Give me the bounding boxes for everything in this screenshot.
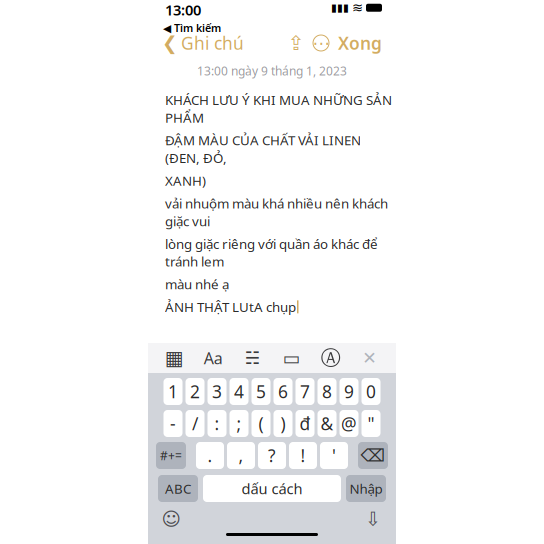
button[interactable]: @ <box>339 410 358 437</box>
button[interactable]: Checklist <box>239 346 265 370</box>
staticText: đ <box>299 412 310 435</box>
button[interactable]: ( <box>251 410 270 437</box>
button[interactable]: ABC <box>158 475 198 502</box>
staticText: ▮▮▮ <box>331 2 349 14</box>
staticText: & <box>320 412 333 435</box>
button[interactable]: , <box>227 442 255 469</box>
button[interactable]: ? <box>258 442 286 469</box>
staticText: 7 <box>300 380 310 403</box>
staticText: 2 <box>190 380 200 403</box>
button[interactable]: 1 <box>163 378 182 405</box>
staticText: ✕ <box>362 348 377 368</box>
button[interactable]: 4 <box>229 378 248 405</box>
staticText: ĐẬM MÀU CỦA CHẤT VẢI LINEN (ĐEN, ĐỎ, <box>165 131 361 167</box>
button[interactable]: Share <box>284 32 308 54</box>
staticText: " <box>367 412 374 435</box>
staticText: Ghi chú <box>181 31 244 54</box>
button[interactable]: 9 <box>339 378 358 405</box>
staticText: 0 <box>366 380 376 403</box>
button[interactable]: / <box>185 410 204 437</box>
staticText: ) <box>280 412 285 435</box>
button[interactable]: dấu cách <box>203 475 341 502</box>
staticText: ẢNH THẬT LUtA chụp <box>165 298 296 316</box>
button[interactable]: : <box>207 410 226 437</box>
staticText: lòng giặc riêng với quần áo khác để trán… <box>165 235 378 270</box>
button[interactable]: " <box>361 410 380 437</box>
staticText: ☵ <box>244 348 260 368</box>
button[interactable]: 2 <box>185 378 204 405</box>
staticText: ⌫ <box>360 446 385 465</box>
button[interactable]: Delete <box>358 442 388 469</box>
staticText: Aa <box>204 347 223 369</box>
staticText: , <box>238 444 243 467</box>
staticText: ☺ <box>161 508 180 530</box>
button[interactable]: ! <box>289 442 317 469</box>
staticText: ≋ <box>352 0 363 15</box>
staticText: 1 <box>168 380 178 403</box>
staticText: ▦ <box>165 347 184 369</box>
staticText: vải nhuộm màu khá nhiều nên khách giặc v… <box>165 194 388 230</box>
staticText: 3 <box>212 380 222 403</box>
button[interactable]: 3 <box>207 378 226 405</box>
button[interactable]: 5 <box>251 378 270 405</box>
button[interactable]: . <box>196 442 224 469</box>
staticText: dấu cách <box>241 479 302 498</box>
button[interactable]: Xong <box>334 27 386 58</box>
staticText: ⋯ <box>312 33 329 53</box>
staticText: ❮ <box>162 32 178 54</box>
button[interactable]: - <box>163 410 182 437</box>
staticText: 9 <box>344 380 354 403</box>
staticText: #+= <box>160 447 182 463</box>
button[interactable]: Table <box>161 346 187 370</box>
button[interactable]: 7 <box>295 378 314 405</box>
button[interactable]: Format <box>200 346 226 370</box>
staticText: ; <box>236 412 241 435</box>
staticText: : <box>214 412 219 435</box>
staticText: 13:00 ngày 9 tháng 1, 2023 <box>197 63 347 79</box>
button[interactable]: ' <box>320 442 348 469</box>
staticText: ( <box>258 412 263 435</box>
staticText: - <box>170 412 176 435</box>
button[interactable]: Markup <box>318 346 344 370</box>
staticText: @ <box>341 412 357 435</box>
staticText: 5 <box>256 380 266 403</box>
staticText: Xong <box>338 31 382 54</box>
button[interactable]: ❮ <box>158 27 248 58</box>
button[interactable]: Emoji <box>158 508 184 530</box>
staticText: màu nhé ạ <box>165 275 229 293</box>
button[interactable]: More <box>308 32 334 54</box>
button[interactable]: Nhập <box>346 475 386 502</box>
staticText: 6 <box>278 380 288 403</box>
staticText: ' <box>332 444 336 467</box>
button[interactable]: ) <box>273 410 292 437</box>
staticText: . <box>207 444 212 467</box>
button[interactable]: Close <box>357 346 383 370</box>
staticText: ! <box>300 444 305 467</box>
staticText: Nhập <box>349 480 382 497</box>
staticText: Ⓐ <box>321 346 341 370</box>
staticText: KHÁCH LƯU Ý KHI MUA NHỮNG SẢN PHẨM <box>165 91 392 126</box>
button[interactable]: ◀ Tìm kiếm <box>163 21 221 35</box>
staticText: ? <box>268 444 276 467</box>
staticText: 4 <box>234 380 244 403</box>
staticText: ◀ Tìm kiếm <box>163 21 221 35</box>
staticText: / <box>192 412 198 435</box>
button[interactable]: đ <box>295 410 314 437</box>
staticText: ▭ <box>283 347 301 369</box>
button[interactable]: & <box>317 410 336 437</box>
staticText: 8 <box>322 380 332 403</box>
button[interactable]: Camera <box>279 346 305 370</box>
staticText: XANH) <box>165 172 206 189</box>
button[interactable]: ; <box>229 410 248 437</box>
staticText: ABC <box>165 480 191 497</box>
staticText: ⇩ <box>365 508 381 530</box>
button[interactable]: 8 <box>317 378 336 405</box>
button[interactable]: 6 <box>273 378 292 405</box>
button[interactable]: 0 <box>361 378 380 405</box>
staticText: ⇪ <box>287 32 304 54</box>
button[interactable]: #+= <box>156 442 186 469</box>
staticText: 13:00 <box>165 0 201 20</box>
button[interactable]: Dictate <box>360 508 386 530</box>
